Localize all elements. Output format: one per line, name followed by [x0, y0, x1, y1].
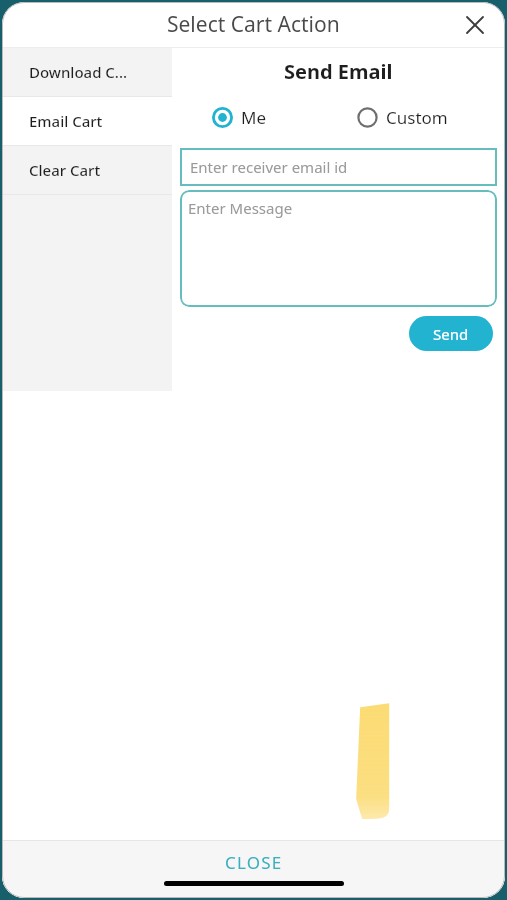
staticText: Download C... [29, 62, 128, 82]
staticText: Send [433, 324, 469, 344]
button[interactable]: CLOSE [199, 845, 309, 880]
button[interactable]: Send [409, 316, 493, 351]
staticText: Email Cart [29, 111, 103, 131]
staticText: Custom [386, 106, 448, 129]
staticText: CLOSE [225, 851, 283, 874]
button[interactable]: Custom [355, 102, 450, 133]
button[interactable]: Me [210, 102, 269, 133]
button[interactable]: Close dialog [453, 3, 497, 47]
staticText: Select Cart Action [167, 10, 340, 39]
button[interactable]: Enter Message [180, 190, 497, 307]
button[interactable]: Email Cart [2, 97, 172, 145]
button[interactable]: Download C... [2, 48, 172, 96]
button[interactable]: Enter receiver email id [180, 148, 497, 186]
button[interactable]: Select Cart Action [161, 8, 346, 41]
staticText: Enter receiver email id [190, 157, 348, 177]
staticText: Enter Message [188, 198, 293, 218]
staticText: Clear Cart [29, 160, 101, 180]
staticText: Send Email [284, 58, 393, 85]
staticText: Me [241, 106, 267, 129]
button[interactable]: Clear Cart [2, 146, 172, 194]
